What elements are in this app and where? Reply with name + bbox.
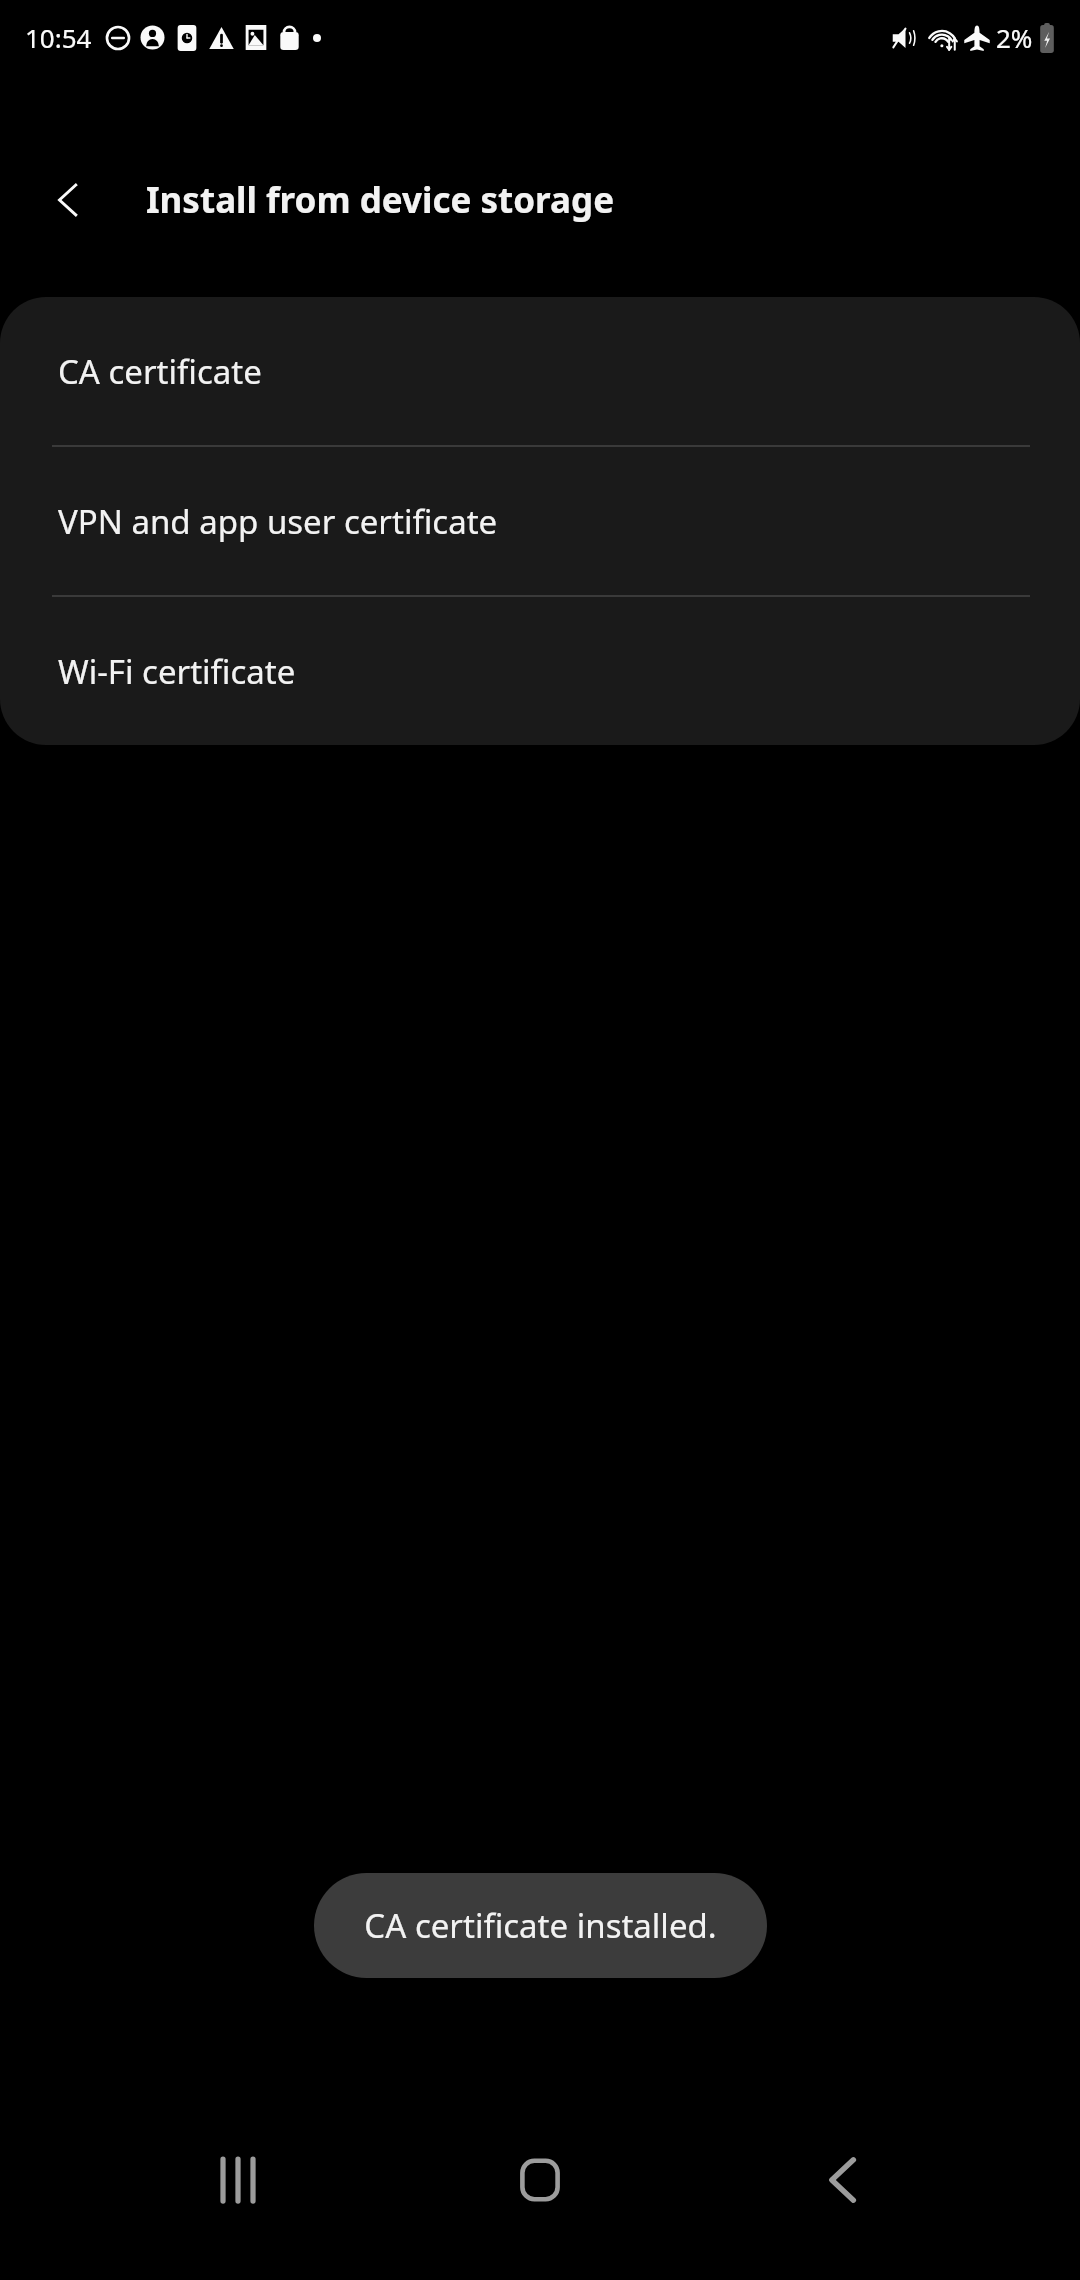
button[interactable]: Home xyxy=(480,2120,600,2240)
staticText: 10:54 xyxy=(25,20,92,55)
staticText: Install from device storage xyxy=(146,176,615,224)
staticText: 2% xyxy=(996,20,1033,55)
button[interactable]: Back xyxy=(782,2120,902,2240)
button[interactable]: Navigate up xyxy=(38,169,100,231)
button[interactable]: Recent apps xyxy=(178,2120,298,2240)
staticText: Wi-Fi certificate xyxy=(58,649,296,694)
button[interactable]: Wi-Fi certificate xyxy=(0,597,1080,745)
staticText: VPN and app user certificate xyxy=(58,499,498,544)
staticText: CA certificate installed. xyxy=(364,1903,717,1948)
button[interactable]: CA certificate installed. xyxy=(314,1873,767,1978)
button[interactable]: CA certificate xyxy=(0,297,1080,445)
button[interactable]: VPN and app user certificate xyxy=(0,447,1080,595)
staticText: CA certificate xyxy=(58,349,262,394)
